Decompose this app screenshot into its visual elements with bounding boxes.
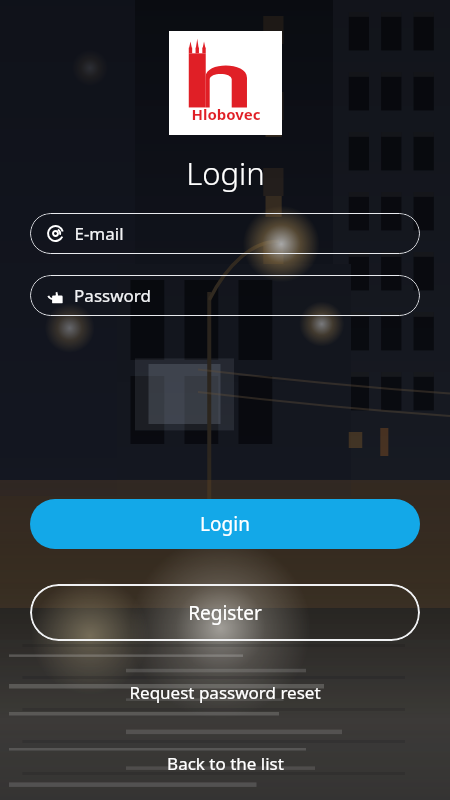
button[interactable]: E-mail	[30, 213, 420, 254]
staticText: E-mail	[74, 222, 124, 245]
button[interactable]: Register	[30, 584, 420, 641]
other: Password	[47, 287, 64, 304]
button[interactable]: Request password reset	[0, 676, 450, 708]
staticText: Back to the list	[167, 752, 284, 775]
staticText: Login	[186, 152, 265, 194]
staticText: Request password reset	[129, 681, 321, 704]
staticText: Hlobovec	[191, 104, 261, 124]
other: E-mail	[47, 225, 64, 242]
button[interactable]: Password	[30, 275, 420, 316]
staticText: Password	[74, 284, 151, 307]
button[interactable]: Back to the list	[0, 747, 450, 779]
staticText: Login	[200, 511, 250, 537]
staticText: Register	[188, 600, 262, 626]
button[interactable]: Login	[30, 499, 420, 549]
